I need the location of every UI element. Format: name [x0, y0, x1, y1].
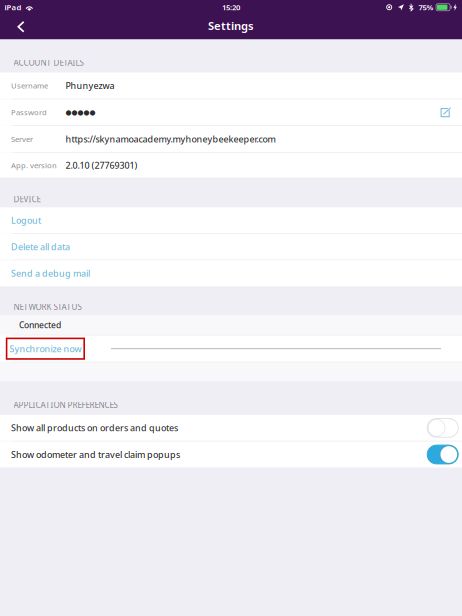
- staticText: DEVICE: [13, 194, 40, 205]
- staticText: Show all products on orders and quotes: [11, 422, 178, 434]
- staticText: https://skynamoacademy.myhoneybeekeeper.…: [65, 133, 275, 145]
- staticText: 75%: [418, 2, 433, 12]
- staticText: Send a debug mail: [11, 267, 90, 279]
- staticText: Connected: [19, 319, 61, 331]
- button[interactable]: Show all products on orders and quotes: [0, 415, 462, 441]
- staticText: Username: [11, 80, 48, 91]
- staticText: Show odometer and travel claim popups: [11, 448, 180, 461]
- staticText: Synchronize now: [9, 343, 81, 355]
- button[interactable]: Delete all data: [0, 234, 462, 260]
- staticText: APPLICATION PREFERENCES: [13, 399, 117, 410]
- button[interactable]: Send a debug mail: [0, 260, 462, 286]
- staticText: NETWORK STATUS: [13, 301, 81, 312]
- button[interactable]: Back: [4, 14, 38, 39]
- staticText: Delete all data: [11, 241, 70, 253]
- staticText: App. version: [11, 160, 57, 170]
- button[interactable]: Edit password: [440, 107, 451, 117]
- staticText: 2.0.10 (27769301): [65, 159, 137, 171]
- staticText: Phunyezwa: [65, 79, 114, 92]
- staticText: Settings: [208, 18, 254, 33]
- staticText: ●●●●●: [65, 108, 95, 116]
- staticText: Logout: [11, 214, 41, 226]
- staticText: Password: [11, 107, 47, 118]
- staticText: iPad: [4, 2, 21, 12]
- button[interactable]: Logout: [0, 207, 462, 233]
- button[interactable]: Synchronize now: [7, 338, 84, 359]
- staticText: 15:20: [222, 2, 240, 12]
- staticText: Server: [11, 134, 33, 144]
- button[interactable]: Show odometer and travel claim popups: [0, 441, 462, 467]
- staticText: ACCOUNT DETAILS: [13, 57, 83, 68]
